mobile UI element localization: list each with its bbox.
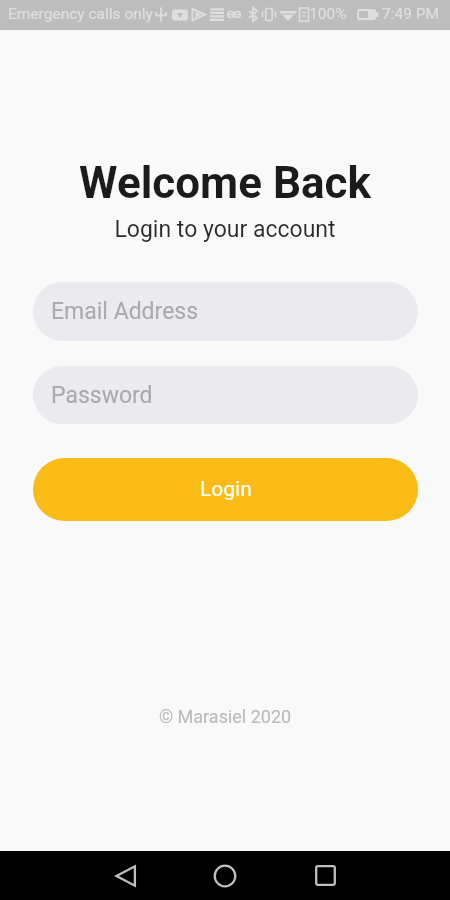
staticText: 7:49 PM [382,5,440,23]
staticText: Login to your account [114,216,336,243]
button[interactable]: Recent apps [297,851,353,900]
button[interactable]: Login [33,458,418,521]
staticText: Password [51,382,153,409]
button[interactable]: Home [197,851,253,900]
staticText: Welcome Back [79,157,371,209]
button[interactable]: Password [33,366,418,424]
staticText: 100% [309,5,347,23]
button[interactable]: Email Address [33,282,418,341]
staticText: Email Address [51,298,199,325]
staticText: Login [200,477,252,502]
staticText: © Marasiel 2020 [159,706,292,727]
button[interactable]: Back [97,851,153,900]
staticText: Emergency calls only [8,5,153,23]
